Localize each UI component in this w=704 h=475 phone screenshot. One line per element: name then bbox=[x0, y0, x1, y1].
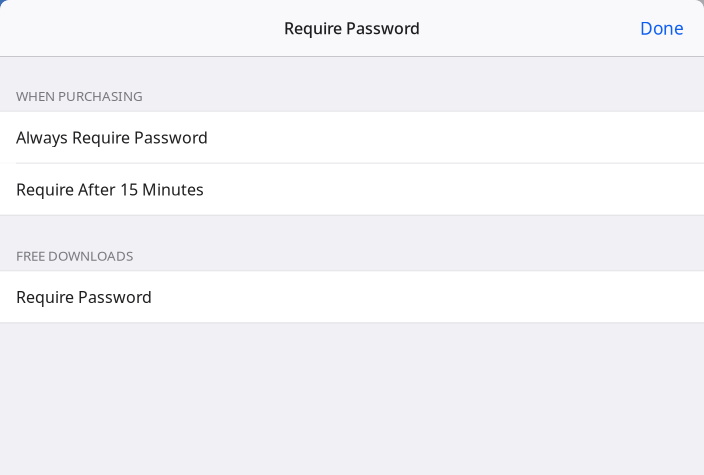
button[interactable]: Require Password bbox=[0, 271, 704, 322]
staticText: Done bbox=[640, 16, 684, 39]
button[interactable]: Require After 15 Minutes bbox=[0, 164, 704, 215]
button[interactable]: Done bbox=[626, 0, 704, 56]
staticText: Always Require Password bbox=[16, 127, 208, 148]
staticText: Require After 15 Minutes bbox=[16, 179, 204, 200]
button[interactable]: Always Require Password bbox=[0, 112, 704, 163]
staticText: WHEN PURCHASING bbox=[16, 87, 143, 105]
staticText: Require Password bbox=[284, 17, 420, 39]
staticText: FREE DOWNLOADS bbox=[16, 247, 133, 264]
staticText: Require Password bbox=[16, 286, 152, 307]
